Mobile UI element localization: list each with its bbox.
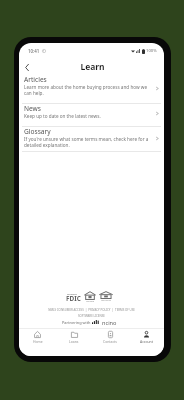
staticText: Keep up to date on the latest news. [24,113,101,119]
staticText: SOFTWARE LICENSE [78,314,105,318]
staticText: Home [33,339,43,344]
staticText: LENDER [86,300,95,303]
staticText: Loans [69,339,79,344]
staticText: Glossary [24,127,51,136]
button[interactable]: Contacts [92,329,128,344]
staticText: HOUSING [101,299,112,302]
staticText: 100% [146,48,157,54]
staticText: 10:41 [28,48,40,54]
staticText: Learn more about the home buying process… [24,84,148,97]
staticText: Member [67,292,78,295]
staticText: NMLS CONSUMER ACCESS | PRIVACY POLICY | … [48,308,135,312]
staticText: Articles [24,75,47,84]
button[interactable]: Account [128,329,164,344]
button[interactable]: Glossary [19,127,164,151]
staticText: News [24,104,41,113]
button[interactable]: Articles [19,75,164,103]
staticText: Contacts [103,339,117,344]
staticText: Account [140,339,153,344]
button[interactable]: Back [20,60,34,74]
staticText: Learn [20,61,164,73]
staticText: FDIC [66,294,81,303]
staticText: If you're unsure what some terms mean, c… [24,136,149,149]
staticText: Partnering with [62,320,91,325]
button[interactable]: News [19,104,164,126]
button[interactable]: Loans [56,329,92,344]
button[interactable]: Home [19,329,56,344]
staticText: ncino [102,319,117,327]
